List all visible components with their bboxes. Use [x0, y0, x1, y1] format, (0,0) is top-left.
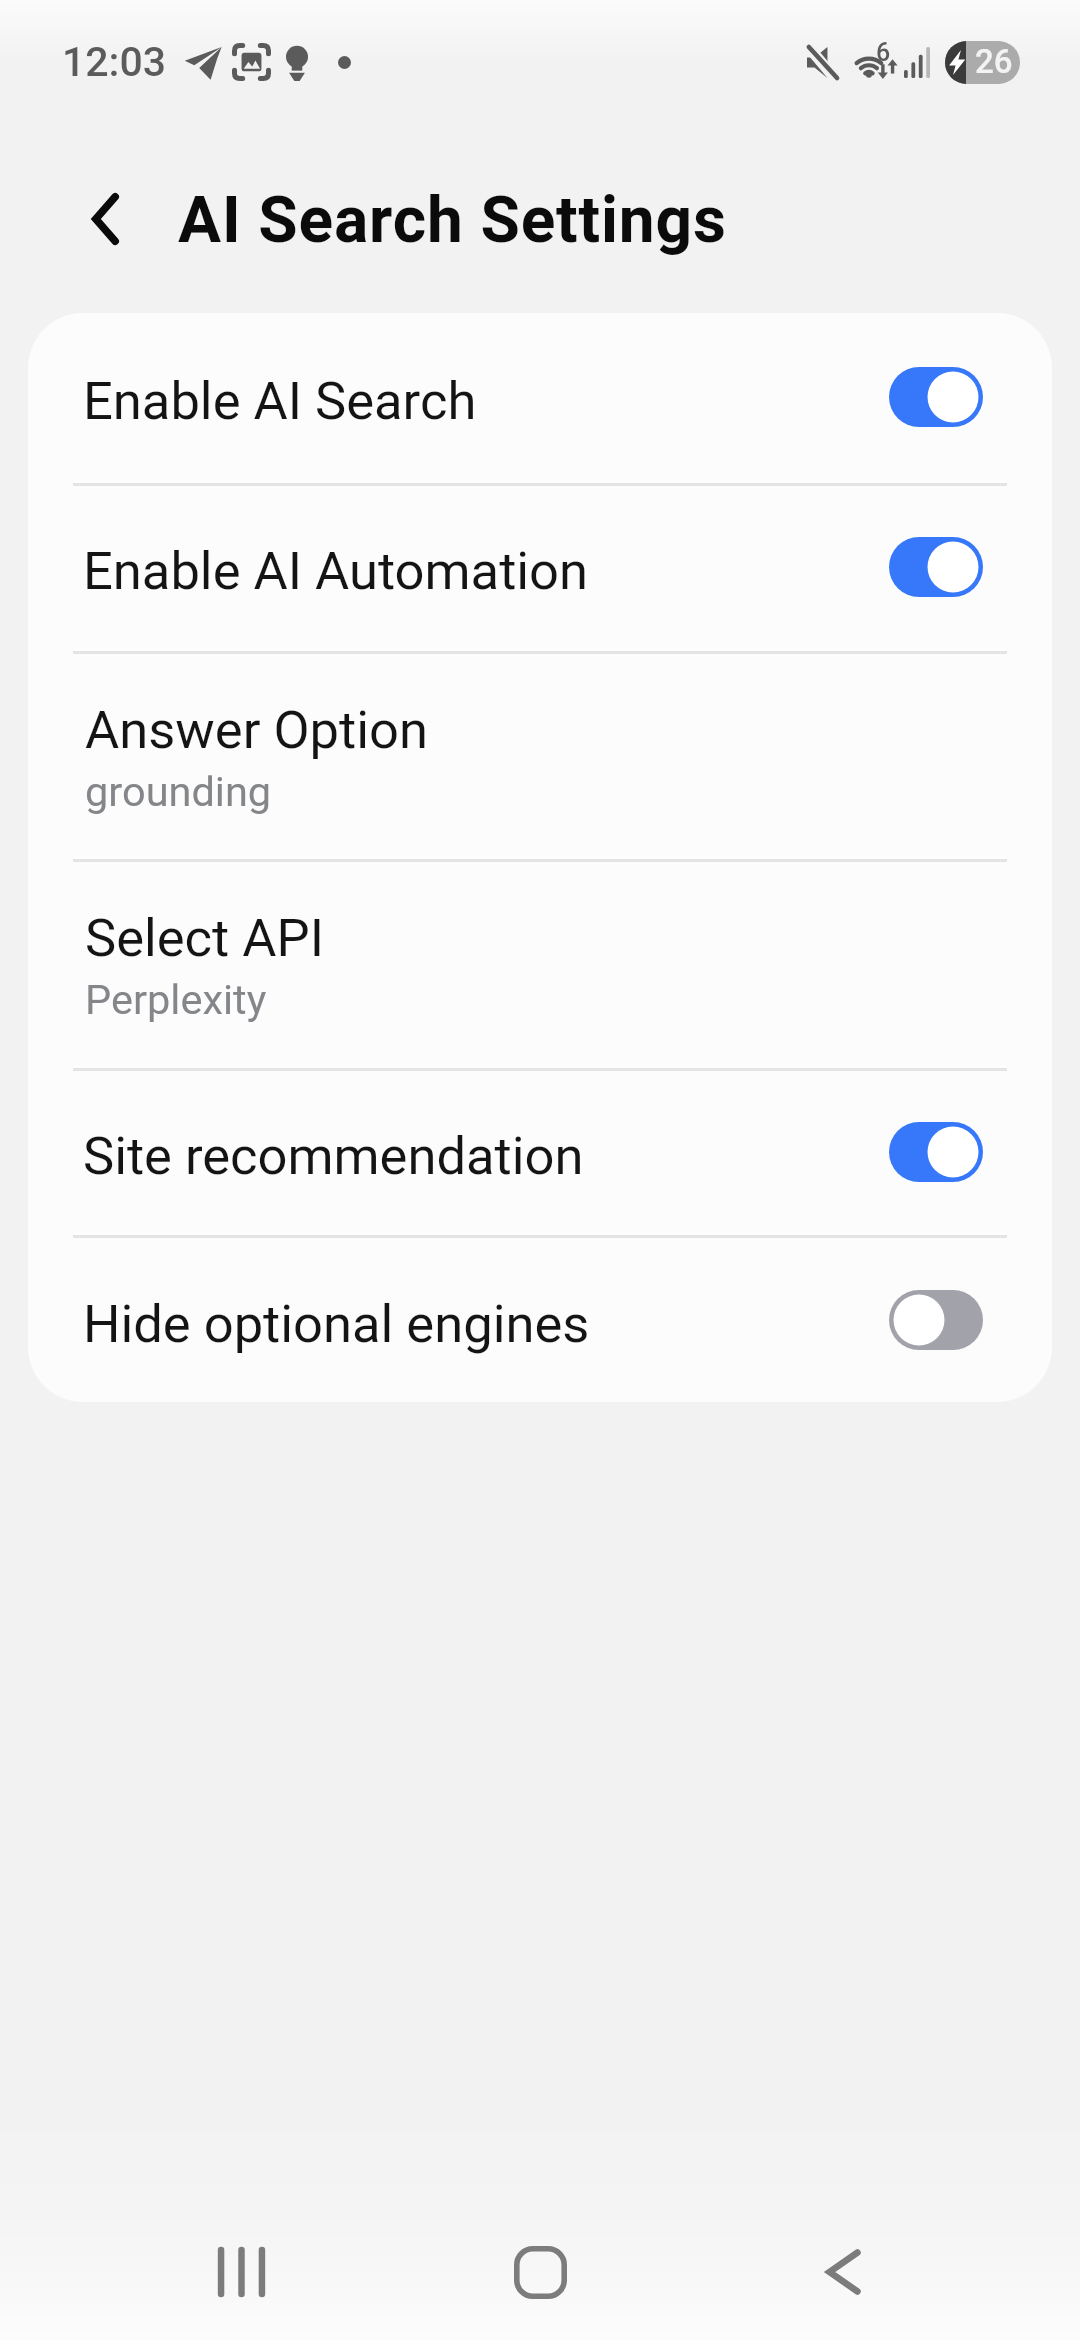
button[interactable]: Site recommendation [28, 1071, 1052, 1232]
staticText: Perplexity [85, 975, 267, 1024]
button[interactable]: Enable AI Search [28, 313, 1052, 480]
button[interactable]: Enable AI Automation [28, 486, 1052, 648]
staticText: AI Search Settings [178, 183, 727, 258]
button[interactable]: Navigate up [62, 176, 148, 262]
staticText: Hide optional engines [83, 1293, 889, 1355]
button[interactable]: Home [440, 2204, 640, 2340]
button[interactable]: Select API [28, 862, 1052, 1065]
staticText: Answer Option [85, 699, 428, 761]
staticText: Site recommendation [83, 1125, 889, 1187]
button[interactable]: Answer Option [28, 654, 1052, 856]
staticText: 12:03 [62, 38, 167, 86]
staticText: Enable AI Search [83, 370, 889, 432]
staticText: Enable AI Automation [83, 540, 889, 602]
staticText: 6 [876, 38, 891, 67]
button[interactable]: Back [743, 2204, 943, 2340]
staticText: Select API [85, 907, 324, 969]
staticText: 26 [975, 42, 1013, 81]
staticText: grounding [85, 767, 272, 816]
button[interactable]: Hide optional engines [28, 1238, 1052, 1402]
button[interactable]: Recent apps [141, 2204, 341, 2340]
